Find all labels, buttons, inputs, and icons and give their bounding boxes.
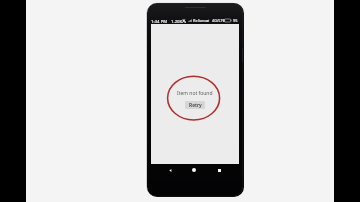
button[interactable]: Back (158, 164, 182, 176)
button[interactable]: Recent apps (207, 164, 231, 176)
staticText: 1:34 PM (151, 18, 168, 24)
staticText: Reliance (193, 18, 209, 23)
button[interactable]: Home (182, 164, 206, 176)
staticText: 4G/LTE (212, 18, 225, 23)
button[interactable]: Retry (185, 101, 205, 109)
staticText: 95 (233, 18, 238, 23)
staticText: Item not found (177, 90, 213, 97)
staticText: 1.20K/s (171, 18, 187, 24)
staticText: Retry (189, 102, 202, 109)
